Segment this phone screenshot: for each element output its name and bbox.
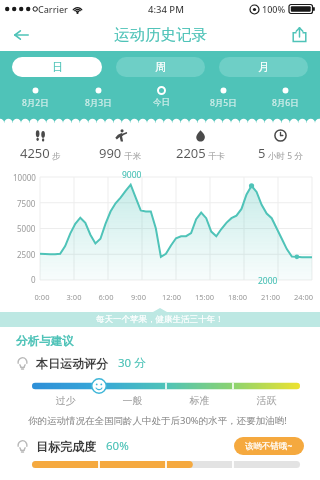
staticText: 活跃	[233, 394, 300, 407]
button[interactable]: 8月5日	[192, 86, 254, 109]
staticText: 2500	[17, 249, 36, 260]
button[interactable]: 日	[12, 57, 102, 77]
staticText: 5	[258, 144, 266, 162]
staticText: 4250	[20, 144, 50, 162]
staticText: Carrier	[38, 3, 68, 15]
staticText: 千米	[124, 151, 141, 162]
staticText: 990	[99, 144, 122, 162]
staticText: 4:34 PM	[148, 3, 184, 16]
staticText: 2000	[258, 275, 278, 287]
button[interactable]: 今日	[130, 86, 192, 108]
staticText: 0:00	[26, 292, 58, 302]
staticText: 8月3日	[85, 97, 112, 109]
staticText: 60%	[106, 438, 129, 454]
button[interactable]: 8月2日	[4, 86, 67, 109]
staticText: 10000	[13, 172, 36, 183]
staticText: 24:00	[287, 292, 320, 302]
staticText: 标准	[166, 394, 233, 407]
staticText: 过少	[32, 394, 99, 407]
button[interactable]: 月	[219, 57, 308, 77]
staticText: 2205	[176, 144, 206, 162]
button[interactable]: Share	[282, 18, 316, 51]
staticText: 日	[52, 60, 63, 74]
staticText: 6:00	[90, 292, 122, 302]
staticText: 9:00	[122, 292, 155, 302]
staticText: 千卡	[208, 151, 225, 162]
staticText: 8月6日	[272, 97, 299, 109]
staticText: 9000	[122, 169, 142, 181]
staticText: 该哟不错哦~	[245, 440, 293, 452]
button[interactable]: 8月6日	[254, 86, 316, 109]
button[interactable]: 分析与建议	[16, 334, 74, 348]
staticText: 小时 5 分	[268, 150, 303, 162]
staticText: 7500	[17, 198, 36, 209]
staticText: 目标完成度	[36, 439, 96, 454]
staticText: 月	[258, 60, 269, 74]
staticText: 30 分	[118, 355, 146, 371]
button[interactable]: Back	[4, 18, 38, 51]
staticText: 你的运动情况在全国同龄人中处于后30%的水平，还要加油哟!	[28, 414, 304, 427]
staticText: 8月2日	[22, 97, 49, 109]
staticText: 一般	[99, 394, 166, 407]
button[interactable]: 该哟不错哦~	[245, 440, 293, 452]
staticText: 运动历史记录	[114, 25, 207, 45]
staticText: 100%	[262, 3, 286, 15]
staticText: 本日运动评分	[36, 356, 108, 371]
staticText: 15:00	[188, 292, 221, 302]
button[interactable]: 8月3日	[67, 86, 130, 109]
staticText: 5000	[17, 223, 36, 234]
button[interactable]: 周	[116, 57, 205, 77]
staticText: 今日	[153, 97, 170, 108]
staticText: 0	[31, 274, 36, 285]
staticText: 每天一个苹果，健康生活三十年！	[96, 314, 224, 325]
staticText: 8月5日	[210, 97, 237, 109]
staticText: 18:00	[221, 292, 254, 302]
staticText: 21:00	[254, 292, 287, 302]
staticText: 3:00	[58, 292, 90, 302]
staticText: 步	[52, 151, 61, 162]
staticText: 周	[155, 60, 166, 74]
staticText: 12:00	[155, 292, 188, 302]
